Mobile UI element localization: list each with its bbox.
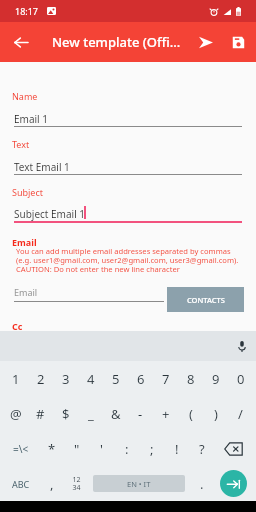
staticText: Subject [12,186,44,198]
staticText: 2 [37,370,45,388]
staticText: Text Email 1 [14,160,70,174]
staticText: Subject Email 1 [14,207,86,221]
button[interactable]: : [114,431,139,466]
staticText: ? [199,440,205,458]
staticText: =\< [13,442,29,456]
staticText: ABC [12,478,30,490]
staticText: 18:17 [15,5,39,17]
button[interactable]: " [64,431,89,466]
staticText: 5 [112,370,120,388]
button[interactable]: - [128,396,153,431]
button[interactable]: $ [53,396,78,431]
staticText: ; [150,440,154,458]
button[interactable]: 2 [28,361,53,396]
staticText: " [74,440,80,458]
staticText: : [125,440,129,458]
staticText: 12 34 [72,475,81,492]
button[interactable]: / [228,396,253,431]
staticText: Email [12,236,37,248]
button[interactable]: 7 [153,361,178,396]
staticText: ) [214,405,218,423]
button[interactable]: ) [203,396,228,431]
staticText: @ [10,405,22,423]
button[interactable]: ABC [3,466,39,501]
staticText: , [50,475,54,493]
button[interactable]: ? [189,431,214,466]
staticText: + [162,405,170,423]
staticText: 3 [62,370,70,388]
button[interactable]: 8 [178,361,203,396]
button[interactable]: . [190,466,214,501]
button[interactable]: + [153,396,178,431]
staticText: # [36,405,45,423]
button[interactable]: Backspace [214,431,253,466]
staticText: 8 [187,370,195,388]
button[interactable]: & [103,396,128,431]
staticText: * [48,440,56,458]
staticText: Text [12,138,30,150]
staticText: Name [12,90,38,102]
button[interactable]: @ [3,396,28,431]
button[interactable]: ! [164,431,189,466]
staticText: 0 [237,370,245,388]
staticText: Cc [12,320,23,332]
staticText: 6 [137,370,145,388]
staticText: You can add multiple email addresses sep… [16,246,239,275]
staticText: 1 [12,370,20,388]
button[interactable]: CONTACTS [167,287,244,312]
staticText: $ [62,405,70,423]
button[interactable]: Back [0,22,41,62]
staticText: EN • IT [127,479,151,489]
button[interactable]: 4 [78,361,103,396]
staticText: . [200,475,204,493]
button[interactable]: ' [89,431,114,466]
staticText: New template (Offi… [52,33,181,51]
staticText: Email 1 [14,112,48,126]
button[interactable]: Save [223,22,254,62]
button[interactable]: 1 [3,361,28,396]
button[interactable]: 0 [228,361,253,396]
staticText: Email [14,286,38,298]
button[interactable]: Numeric keypad [64,466,88,501]
staticText: / [238,405,243,423]
button[interactable]: 5 [103,361,128,396]
staticText: 9 [212,370,220,388]
staticText: 4 [87,370,95,388]
button[interactable]: 3 [53,361,78,396]
button[interactable]: ( [178,396,203,431]
button[interactable]: 6 [128,361,153,396]
button[interactable]: Enter [220,470,247,497]
button[interactable]: * [39,431,64,466]
staticText: _ [88,405,94,423]
staticText: & [111,405,121,423]
staticText: ! [175,440,179,458]
staticText: ' [100,440,103,458]
button[interactable]: Send [190,22,221,62]
button[interactable]: _ [78,396,103,431]
staticText: 7 [162,370,170,388]
staticText: ( [189,405,193,423]
staticText: - [138,405,143,423]
button[interactable]: ; [139,431,164,466]
button[interactable]: , [39,466,64,501]
button[interactable]: 9 [203,361,228,396]
staticText: CONTACTS [187,295,225,305]
button[interactable]: Voice input [228,331,256,361]
button[interactable]: EN • IT [93,475,185,492]
button[interactable]: # [28,396,53,431]
button[interactable]: =\< [3,431,39,466]
